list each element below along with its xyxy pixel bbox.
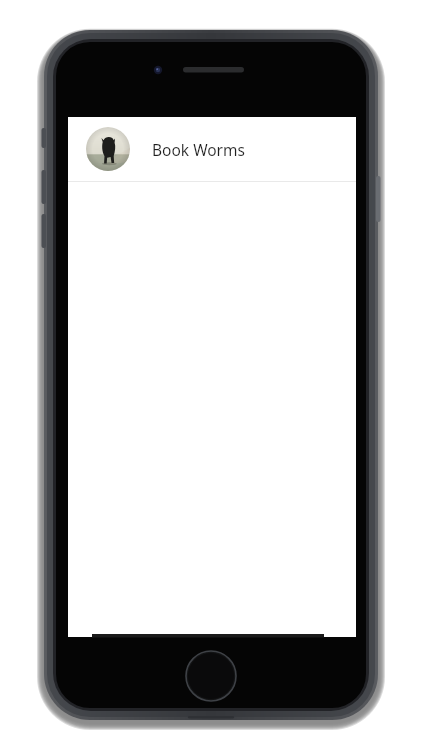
other: Group photo	[86, 127, 130, 171]
staticText: Book Worms	[152, 139, 245, 160]
button[interactable]: Group photo	[68, 117, 356, 181]
